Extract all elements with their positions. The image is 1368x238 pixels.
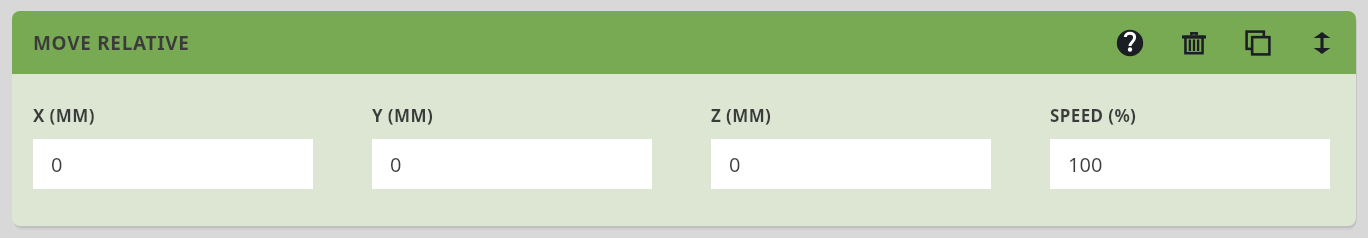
button[interactable]: 100 [1050, 139, 1330, 189]
button[interactable]: Help [1108, 21, 1152, 65]
button[interactable]: 0 [711, 139, 991, 189]
staticText: Y (MM) [372, 104, 434, 127]
staticText: 0 [390, 151, 402, 178]
staticText: 0 [51, 151, 63, 178]
staticText: MOVE RELATIVE [33, 30, 190, 56]
staticText: SPEED (%) [1050, 104, 1137, 127]
staticText: Z (MM) [711, 104, 772, 127]
staticText: 100 [1068, 151, 1103, 178]
button[interactable]: Duplicate [1236, 21, 1280, 65]
button[interactable]: Delete [1172, 21, 1216, 65]
staticText: 0 [729, 151, 741, 178]
button[interactable]: 0 [33, 139, 313, 189]
button[interactable]: Reorder [1300, 21, 1344, 65]
button[interactable]: 0 [372, 139, 652, 189]
staticText: X (MM) [33, 104, 95, 127]
